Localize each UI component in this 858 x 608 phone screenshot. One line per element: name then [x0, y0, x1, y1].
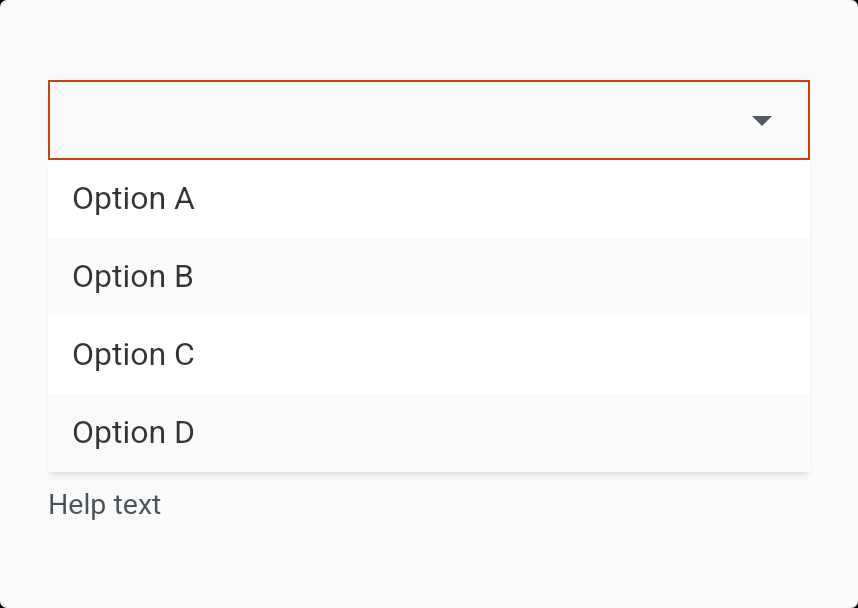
- staticText: Option C: [72, 335, 195, 373]
- staticText: Option B: [72, 257, 195, 295]
- button[interactable]: Option C: [48, 316, 810, 394]
- button[interactable]: Option A: [48, 160, 810, 238]
- other: Show options: [752, 116, 772, 126]
- staticText: Option D: [72, 413, 196, 451]
- staticText: Help text: [48, 488, 162, 521]
- button[interactable]: Option D: [48, 394, 810, 472]
- button[interactable]: Select an option: [48, 80, 810, 160]
- staticText: Option A: [72, 179, 195, 217]
- button[interactable]: Option B: [48, 238, 810, 316]
